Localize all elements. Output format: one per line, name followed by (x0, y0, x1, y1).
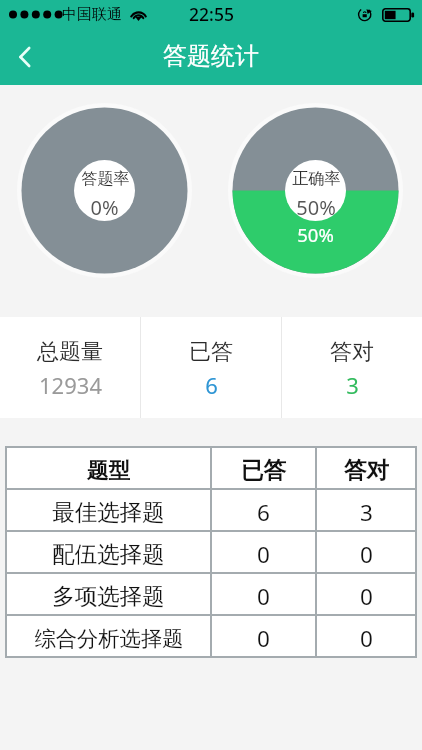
staticText: 总题量 (37, 338, 103, 366)
staticText: 中国联通 (62, 5, 122, 24)
staticText: 正确率 (292, 168, 341, 188)
staticText: 答题率 (81, 168, 130, 188)
button[interactable]: 已答 (141, 317, 281, 418)
button[interactable]: 答对 (282, 317, 422, 418)
staticText: 多项选择题 (52, 582, 165, 610)
staticText: 答对 (330, 338, 374, 366)
staticText: 已答 (241, 456, 286, 484)
button[interactable]: Back (0, 29, 50, 85)
staticText: 0 (257, 581, 270, 612)
staticText: 0 (360, 581, 373, 612)
staticText: 已答 (189, 338, 233, 366)
staticText: 6 (257, 497, 270, 528)
staticText: 0 (257, 539, 270, 570)
staticText: 0 (257, 623, 270, 654)
staticText: 综合分析选择题 (34, 625, 184, 652)
staticText: 22:55 (189, 2, 234, 26)
staticText: 0% (90, 194, 119, 221)
staticText: 0 (360, 539, 373, 570)
staticText: 3 (360, 497, 373, 528)
staticText: 题型 (87, 457, 130, 484)
staticText: 50% (296, 194, 336, 221)
staticText: 3 (346, 370, 359, 400)
staticText: 6 (205, 370, 218, 400)
staticText: 最佳选择题 (52, 498, 165, 526)
staticText: 0 (360, 623, 373, 654)
staticText: 12934 (39, 370, 102, 400)
staticText: 配伍选择题 (52, 540, 165, 568)
staticText: 答对 (344, 456, 389, 484)
staticText: 答题统计 (163, 41, 259, 71)
button[interactable]: 总题量 (0, 317, 140, 418)
staticText: 50% (297, 222, 334, 247)
